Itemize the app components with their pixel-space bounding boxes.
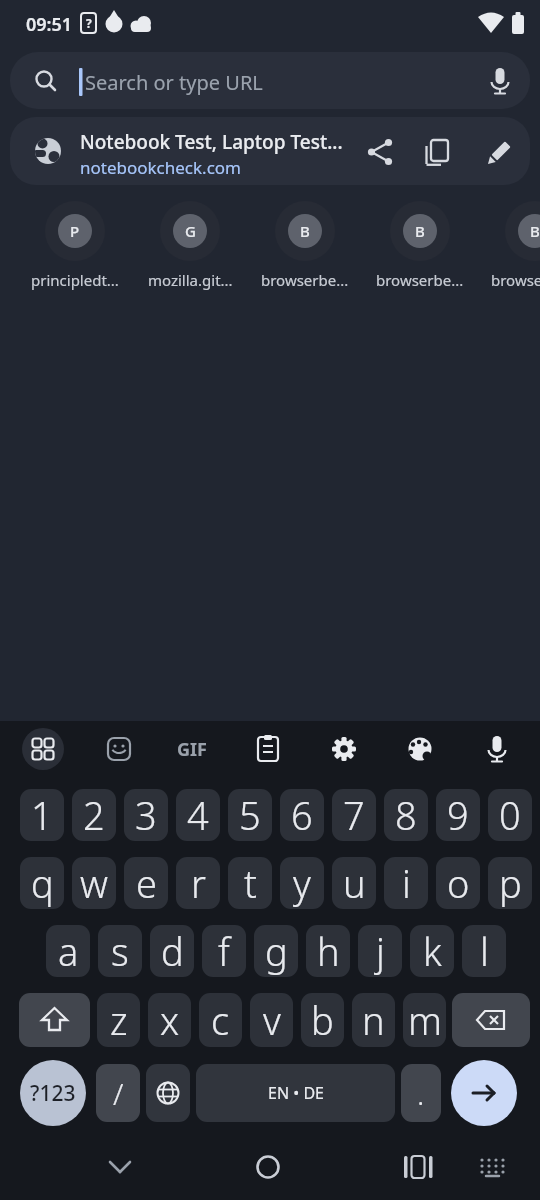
staticText: 4: [187, 789, 209, 841]
staticText: 5: [239, 789, 261, 841]
staticText: EN • DE: [268, 1082, 324, 1104]
staticText: l: [480, 925, 489, 977]
button[interactable]: j: [358, 925, 402, 977]
button[interactable]: B: [505, 201, 540, 261]
staticText: 09:51: [26, 12, 73, 37]
button[interactable]: g: [254, 925, 298, 977]
button[interactable]: m: [403, 993, 446, 1047]
button[interactable]: s: [98, 925, 142, 977]
staticText: g: [265, 925, 288, 977]
button[interactable]: [451, 1060, 517, 1126]
staticText: d: [161, 925, 184, 977]
button[interactable]: c: [199, 993, 242, 1047]
button[interactable]: 7: [332, 789, 376, 841]
staticText: k: [423, 925, 442, 977]
button[interactable]: P: [45, 201, 105, 261]
staticText: h: [317, 925, 340, 977]
button[interactable]: [10, 52, 530, 109]
button[interactable]: 9: [436, 789, 480, 841]
staticText: mozilla.git...: [148, 270, 233, 290]
button[interactable]: EN • DE: [196, 1064, 395, 1122]
staticText: y: [293, 857, 311, 909]
button[interactable]: 8: [384, 789, 428, 841]
staticText: G: [185, 221, 196, 241]
button[interactable]: [19, 993, 90, 1047]
staticText: 8: [395, 789, 417, 841]
staticText: GIF: [177, 737, 207, 761]
button[interactable]: [10, 117, 530, 185]
button[interactable]: u: [332, 857, 376, 909]
button[interactable]: p: [488, 857, 532, 909]
staticText: x: [160, 994, 180, 1046]
button[interactable]: /: [96, 1064, 140, 1122]
staticText: v: [263, 994, 281, 1046]
staticText: B: [415, 221, 425, 241]
staticText: p: [499, 857, 522, 909]
button[interactable]: .: [401, 1064, 441, 1122]
staticText: n: [362, 994, 385, 1046]
staticText: Search or type URL: [85, 69, 263, 96]
button[interactable]: B: [390, 201, 450, 261]
staticText: P: [70, 221, 80, 241]
button[interactable]: [146, 1064, 190, 1122]
staticText: B: [300, 221, 310, 241]
button[interactable]: f: [202, 925, 246, 977]
button[interactable]: 4: [176, 789, 220, 841]
staticText: 1: [31, 789, 53, 841]
button[interactable]: k: [410, 925, 454, 977]
button[interactable]: w: [72, 857, 116, 909]
button[interactable]: q: [20, 857, 64, 909]
staticText: w: [80, 857, 108, 909]
staticText: 9: [447, 789, 469, 841]
staticText: browserbe...: [491, 270, 540, 290]
button[interactable]: ?123: [20, 1060, 86, 1126]
staticText: c: [211, 994, 230, 1046]
staticText: z: [110, 994, 128, 1046]
button[interactable]: b: [301, 993, 344, 1047]
button[interactable]: h: [306, 925, 350, 977]
button[interactable]: r: [176, 857, 220, 909]
staticText: 3: [135, 789, 157, 841]
button[interactable]: v: [250, 993, 293, 1047]
staticText: i: [402, 857, 411, 909]
staticText: .: [417, 1073, 425, 1114]
staticText: 0: [499, 789, 521, 841]
staticText: o: [447, 857, 470, 909]
staticText: b: [311, 994, 334, 1046]
button[interactable]: 1: [20, 789, 64, 841]
button[interactable]: l: [462, 925, 506, 977]
staticText: q: [31, 857, 54, 909]
button[interactable]: o: [436, 857, 480, 909]
staticText: browserbe...: [261, 270, 349, 290]
staticText: s: [111, 925, 129, 977]
button[interactable]: B: [275, 201, 335, 261]
staticText: u: [343, 857, 366, 909]
staticText: B: [530, 221, 540, 241]
button[interactable]: 0: [488, 789, 532, 841]
button[interactable]: x: [148, 993, 191, 1047]
button[interactable]: 3: [124, 789, 168, 841]
button[interactable]: a: [46, 925, 90, 977]
staticText: t: [244, 857, 257, 909]
button[interactable]: z: [97, 993, 140, 1047]
button[interactable]: [452, 993, 530, 1047]
button[interactable]: e: [124, 857, 168, 909]
button[interactable]: 6: [280, 789, 324, 841]
button[interactable]: n: [352, 993, 395, 1047]
staticText: browserbe...: [376, 270, 464, 290]
button[interactable]: d: [150, 925, 194, 977]
staticText: r: [191, 857, 206, 909]
button[interactable]: t: [228, 857, 272, 909]
button[interactable]: i: [384, 857, 428, 909]
button[interactable]: 5: [228, 789, 272, 841]
button[interactable]: 2: [72, 789, 116, 841]
staticText: m: [408, 994, 442, 1046]
staticText: j: [376, 925, 385, 977]
staticText: e: [136, 857, 157, 909]
staticText: 2: [83, 789, 105, 841]
button[interactable]: y: [280, 857, 324, 909]
button[interactable]: G: [160, 201, 220, 261]
staticText: 6: [291, 789, 313, 841]
staticText: principledt...: [31, 270, 119, 290]
staticText: notebookcheck.com: [80, 156, 242, 179]
